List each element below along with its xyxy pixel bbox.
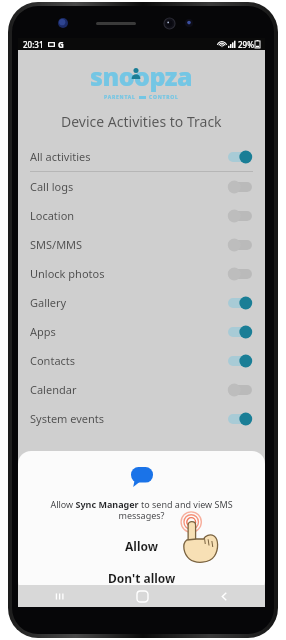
staticText: Allow Sync Manager to send and view SMS … xyxy=(36,498,247,522)
staticText: 29% xyxy=(238,39,254,50)
button[interactable]: Allow xyxy=(105,535,178,557)
staticText: snoopza xyxy=(90,59,193,93)
staticText: Unlock photos xyxy=(30,266,105,281)
staticText: PARENTAL xyxy=(104,94,136,101)
staticText: Apps xyxy=(30,324,56,339)
button[interactable]: Off xyxy=(227,180,253,194)
button[interactable]: Unlock photos xyxy=(18,259,265,288)
button[interactable]: On xyxy=(227,354,253,368)
staticText: Don't allow xyxy=(108,570,176,586)
staticText: Calendar xyxy=(30,382,77,397)
button[interactable]: Off xyxy=(227,267,253,281)
button[interactable]: Off xyxy=(227,383,253,397)
staticText: Location xyxy=(30,208,75,223)
staticText: Allow xyxy=(125,538,158,554)
button[interactable]: Location xyxy=(18,201,265,230)
staticText: System events xyxy=(30,411,105,426)
button[interactable]: On xyxy=(227,296,253,310)
button[interactable]: All activities xyxy=(18,142,265,171)
button[interactable]: Apps xyxy=(18,317,265,346)
staticText: G xyxy=(58,39,64,50)
staticText: Contacts xyxy=(30,353,76,368)
staticText: CONTROL xyxy=(149,94,179,101)
staticText: SMS/MMS xyxy=(30,237,83,252)
button[interactable]: System events xyxy=(18,404,265,433)
button[interactable]: Gallery xyxy=(18,288,265,317)
button[interactable]: Don't allow xyxy=(88,567,196,589)
button[interactable]: On xyxy=(227,325,253,339)
button[interactable]: Off xyxy=(227,238,253,252)
button[interactable]: On xyxy=(227,412,253,426)
staticText: Gallery xyxy=(30,295,67,310)
staticText: Call logs xyxy=(30,179,74,194)
button[interactable]: On xyxy=(227,150,253,164)
button[interactable]: Off xyxy=(227,209,253,223)
other: Tap Allow xyxy=(178,514,222,564)
staticText: All activities xyxy=(30,149,91,164)
button[interactable]: Recents xyxy=(18,585,101,607)
button[interactable]: Calendar xyxy=(18,375,265,404)
button[interactable]: SMS/MMS xyxy=(18,230,265,259)
button[interactable]: Home xyxy=(101,585,183,607)
staticText: Device Activities to Track xyxy=(61,112,222,131)
staticText: 20:31 xyxy=(23,39,44,50)
button[interactable]: Contacts xyxy=(18,346,265,375)
button[interactable]: Call logs xyxy=(18,172,265,201)
button[interactable]: Back xyxy=(183,585,265,607)
